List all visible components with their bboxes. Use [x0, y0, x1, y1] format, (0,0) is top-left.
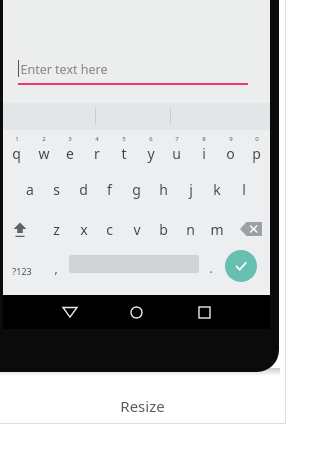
button[interactable]: Shift — [3, 210, 37, 248]
button[interactable]: l — [230, 170, 257, 208]
button[interactable]: g — [123, 170, 150, 208]
staticText: 7 — [175, 135, 179, 143]
staticText: 4 — [95, 135, 99, 143]
button[interactable]: f — [96, 170, 123, 208]
staticText: f — [107, 180, 112, 199]
staticText: l — [242, 180, 246, 199]
button[interactable]: , — [45, 251, 67, 291]
staticText: d — [79, 180, 88, 199]
staticText: w — [38, 144, 50, 163]
button[interactable]: Backspace — [231, 210, 270, 248]
staticText: c — [106, 220, 113, 239]
button[interactable]: a — [16, 170, 43, 208]
staticText: 3 — [68, 135, 72, 143]
staticText: 6 — [149, 135, 153, 143]
staticText: , — [54, 260, 58, 276]
staticText: b — [159, 220, 168, 239]
button[interactable]: 5 — [110, 130, 137, 168]
staticText: . — [209, 260, 213, 276]
button[interactable]: 3 — [56, 130, 83, 168]
button[interactable]: s — [43, 170, 70, 208]
staticText: 8 — [202, 135, 206, 143]
button[interactable]: 4 — [83, 130, 110, 168]
button[interactable]: ?123 — [3, 251, 41, 291]
button[interactable]: j — [177, 170, 204, 208]
button[interactable]: k — [203, 170, 230, 208]
staticText: 1 — [15, 135, 19, 143]
staticText: a — [26, 180, 34, 199]
staticText: 9 — [229, 135, 233, 143]
staticText: ?123 — [12, 265, 32, 277]
staticText: j — [189, 180, 193, 199]
button[interactable]: h — [150, 170, 177, 208]
staticText: 2 — [42, 135, 46, 143]
button[interactable]: 9 — [217, 130, 244, 168]
button[interactable]: 0 — [243, 130, 270, 168]
staticText: e — [66, 144, 74, 163]
button[interactable]: 7 — [163, 130, 190, 168]
button[interactable]: Back — [45, 295, 95, 329]
staticText: 5 — [122, 135, 126, 143]
button[interactable]: Enter text here — [18, 58, 248, 86]
staticText: m — [210, 220, 224, 239]
staticText: n — [186, 220, 195, 239]
staticText: p — [252, 144, 261, 163]
staticText: i — [202, 144, 206, 163]
staticText: t — [121, 144, 127, 163]
button[interactable]: Resize — [0, 390, 285, 422]
button[interactable]: Recents — [179, 295, 229, 329]
staticText: 0 — [255, 135, 259, 143]
staticText: x — [80, 220, 88, 239]
staticText: r — [94, 144, 100, 163]
button[interactable]: 2 — [30, 130, 57, 168]
staticText: o — [226, 144, 235, 163]
button[interactable]: z — [43, 210, 70, 248]
staticText: Enter text here — [20, 61, 108, 78]
button[interactable]: c — [96, 210, 123, 248]
button[interactable]: 8 — [190, 130, 217, 168]
button[interactable]: v — [123, 210, 150, 248]
staticText: z — [53, 220, 60, 239]
button[interactable]: b — [150, 210, 177, 248]
staticText: v — [133, 220, 141, 239]
button[interactable]: 1 — [3, 130, 30, 168]
staticText: Resize — [120, 396, 165, 416]
staticText: y — [147, 144, 155, 163]
button[interactable]: m — [203, 210, 230, 248]
button[interactable]: Enter — [225, 250, 257, 282]
button[interactable]: Home — [111, 295, 161, 329]
staticText: q — [12, 144, 21, 163]
staticText: h — [159, 180, 168, 199]
button[interactable]: d — [70, 170, 97, 208]
staticText: s — [53, 180, 60, 199]
staticText: u — [172, 144, 181, 163]
button[interactable]: 6 — [137, 130, 164, 168]
button[interactable]: x — [70, 210, 97, 248]
button[interactable]: . — [201, 251, 221, 291]
button[interactable]: n — [177, 210, 204, 248]
staticText: g — [132, 180, 141, 199]
staticText: k — [213, 180, 221, 199]
